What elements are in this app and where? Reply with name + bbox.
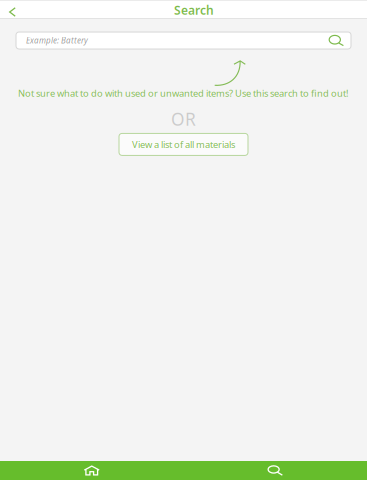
staticText: View a list of all materials (132, 138, 235, 151)
staticText: Not sure what to do with used or unwante… (18, 87, 349, 99)
button[interactable]: View a list of all materials (119, 133, 248, 155)
button[interactable]: Back (0, 1, 28, 19)
staticText: OR (171, 107, 196, 130)
button[interactable]: Search (183, 461, 367, 480)
button[interactable]: Home (0, 461, 183, 480)
staticText: Search (174, 2, 214, 18)
button[interactable]: Search (329, 35, 344, 46)
staticText: Example: Battery (26, 35, 88, 46)
